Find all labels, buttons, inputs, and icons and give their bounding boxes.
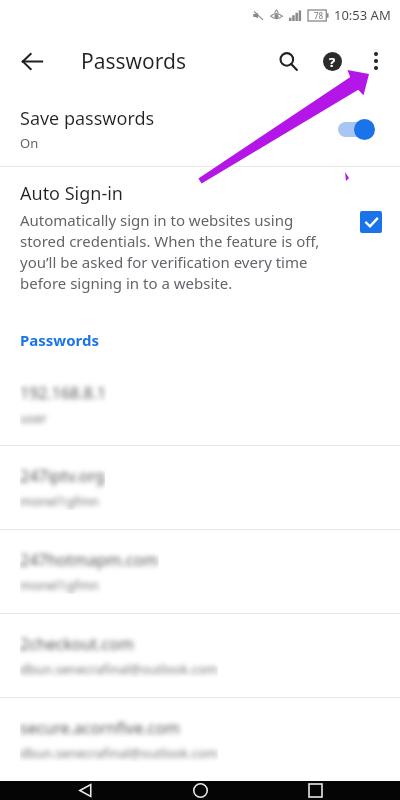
button[interactable]: Recent apps [292, 781, 338, 800]
button[interactable]: secure.acornfive.com [0, 698, 400, 781]
staticText: ? [329, 53, 336, 71]
staticText: monel1gfmn [20, 492, 99, 510]
staticText: Save passwords [20, 106, 155, 131]
staticText: user [20, 409, 47, 427]
button[interactable]: 247iptv.org [0, 446, 400, 529]
staticText: 78 [314, 10, 324, 21]
staticText: secure.acornfive.com [20, 717, 181, 739]
staticText: 192.168.8.1 [20, 382, 107, 404]
staticText: Passwords [81, 47, 187, 76]
staticText: Auto Sign-in [20, 181, 123, 206]
button[interactable]: Help [310, 39, 354, 83]
staticText: 10:53 AM [334, 6, 391, 24]
button[interactable]: Auto Sign-in [0, 167, 400, 317]
staticText: 247iptv.org [20, 465, 105, 487]
button[interactable]: 2checkout.com [0, 614, 400, 697]
staticText: Passwords [20, 330, 99, 350]
staticText: 2checkout.com [20, 633, 134, 655]
staticText: On [20, 134, 39, 152]
button[interactable]: 192.168.8.1 [0, 363, 400, 445]
button[interactable]: Back [10, 39, 54, 83]
staticText: monel1gfmn [20, 576, 99, 594]
button[interactable]: Search [266, 39, 310, 83]
button[interactable]: More options [354, 39, 398, 83]
button[interactable]: Home [177, 781, 223, 800]
button[interactable]: 247hotmapm.com [0, 530, 400, 613]
button[interactable]: Save passwords [0, 92, 400, 166]
button[interactable]: Back [62, 781, 108, 800]
staticText: Automatically sign in to websites using … [20, 210, 342, 294]
staticText: dbun.senecrafinal@outlook.com [20, 660, 218, 678]
staticText: dbun.senecrafinal@outlook.com [20, 744, 218, 762]
staticText: 247hotmapm.com [20, 549, 159, 571]
